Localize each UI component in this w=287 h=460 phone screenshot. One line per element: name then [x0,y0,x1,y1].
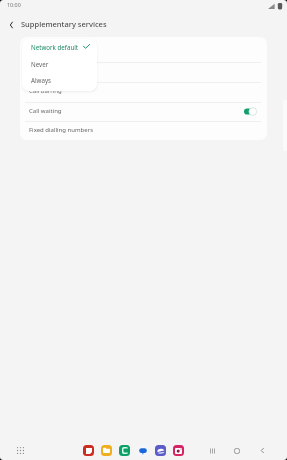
button[interactable]: Call barring [20,82,267,102]
staticText: 10:00 [7,1,21,8]
button[interactable]: Video call [20,37,267,62]
staticText: Never [31,60,49,68]
button[interactable]: Navigate up [3,16,20,33]
button[interactable]: Recents [206,444,219,457]
button[interactable]: Call waiting [20,102,267,121]
button[interactable]: Internet [155,445,166,456]
button[interactable]: Always [22,71,97,88]
staticText: Supplementary services [21,19,107,29]
button[interactable]: Samsung Notes [83,445,94,456]
button[interactable]: Home [230,444,243,457]
staticText: Network default [31,43,79,51]
button[interactable]: Camera [173,445,184,456]
staticText: Always [31,76,52,84]
button[interactable]: Apps [14,444,27,457]
button[interactable]: Fixed dialling numbers [20,121,267,140]
staticText: Call barring [29,87,62,95]
button[interactable]: Back [256,444,269,457]
staticText: Video call [29,45,56,53]
button[interactable]: My Files [101,445,112,456]
button[interactable]: Network default [22,39,97,55]
button[interactable]: Call forwarding [20,62,267,82]
button[interactable]: Messages [137,445,148,456]
staticText: Fixed dialling numbers [29,126,94,134]
button[interactable]: Never [22,55,97,72]
staticText: Call waiting [29,107,62,115]
button[interactable]: Calculator [119,445,130,456]
